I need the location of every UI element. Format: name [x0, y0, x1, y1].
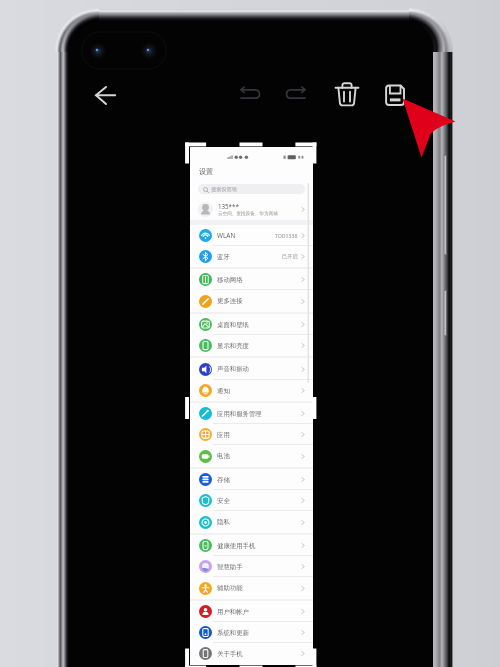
button[interactable]: WLAN — [190, 225, 313, 246]
staticText: 蓝牙 — [217, 253, 230, 261]
staticText: 应用 — [217, 431, 230, 439]
button[interactable]: 用户和帐户 — [190, 601, 313, 622]
staticText: 搜索设置项 — [211, 186, 237, 193]
staticText: 应用和服务管理 — [217, 410, 262, 418]
staticText: TOD1338 — [275, 232, 298, 239]
button[interactable]: Undo — [230, 78, 268, 116]
button[interactable]: 通知 — [190, 380, 313, 401]
button[interactable]: 系统和更新 — [190, 622, 313, 643]
staticText: 安全 — [217, 497, 230, 505]
staticText: 系统和更新 — [217, 629, 249, 637]
button[interactable]: 桌面和壁纸 — [190, 314, 313, 335]
staticText: 设置 — [199, 167, 214, 176]
button[interactable]: 135*** — [190, 199, 313, 220]
button[interactable]: Redo — [278, 78, 316, 116]
staticText: 移动网络 — [217, 276, 243, 284]
staticText: 隐私 — [217, 518, 230, 526]
staticText: 辅助功能 — [217, 584, 243, 592]
staticText: 显示和亮度 — [217, 342, 249, 350]
staticText: 桌面和壁纸 — [217, 321, 249, 329]
button[interactable]: 电池 — [190, 445, 313, 467]
button[interactable]: 搜索设置项 — [198, 184, 305, 194]
button[interactable]: 应用和服务管理 — [190, 403, 313, 424]
staticText: 存储 — [217, 476, 230, 484]
staticText: 已开启 — [282, 253, 298, 260]
button[interactable]: 智慧助手 — [190, 556, 313, 577]
staticText: 通知 — [217, 387, 230, 395]
staticText: 用户和帐户 — [217, 608, 249, 616]
staticText: WLAN — [217, 231, 236, 240]
button[interactable]: 应用 — [190, 424, 313, 445]
button[interactable]: 关于手机 — [190, 643, 313, 664]
button[interactable]: Delete — [327, 74, 367, 114]
button[interactable]: 更多连接 — [190, 290, 313, 312]
button[interactable]: 健康使用手机 — [190, 535, 313, 556]
button[interactable]: Save — [375, 76, 415, 116]
staticText: 更多连接 — [217, 297, 243, 305]
staticText: 135*** — [218, 202, 239, 210]
staticText: 声音和振动 — [217, 365, 249, 373]
button[interactable]: 显示和亮度 — [190, 335, 313, 356]
staticText: 智慧助手 — [217, 563, 243, 571]
staticText: 关于手机 — [217, 650, 243, 658]
staticText: 云空间、查找设备、华为商城 — [218, 211, 278, 217]
button[interactable]: 存储 — [190, 469, 313, 490]
staticText: 健康使用手机 — [217, 542, 256, 550]
button[interactable]: 蓝牙 — [190, 246, 313, 267]
staticText: 电池 — [217, 452, 230, 460]
button[interactable]: 移动网络 — [190, 269, 313, 290]
button[interactable]: 辅助功能 — [190, 577, 313, 599]
button[interactable]: Back — [86, 75, 126, 115]
button[interactable]: 声音和振动 — [190, 358, 313, 380]
button[interactable]: 安全 — [190, 490, 313, 511]
button[interactable]: 隐私 — [190, 511, 313, 533]
